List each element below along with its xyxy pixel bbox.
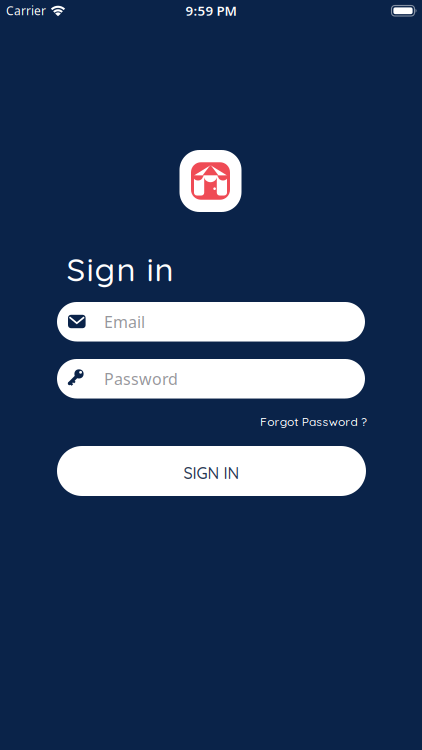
button[interactable]: SIGN IN — [57, 446, 366, 496]
staticText: Forgot Password ? — [260, 414, 367, 429]
staticText: Password — [104, 368, 178, 389]
staticText: Carrier — [6, 2, 46, 18]
staticText: 9:59 PM — [185, 2, 236, 19]
staticText: SIGN IN — [183, 463, 239, 483]
button[interactable]: Email — [57, 302, 365, 341]
staticText: Sign in — [66, 249, 173, 289]
button[interactable]: Password — [57, 359, 365, 398]
button[interactable]: Forgot Password ? — [260, 414, 367, 429]
staticText: Email — [104, 311, 145, 332]
